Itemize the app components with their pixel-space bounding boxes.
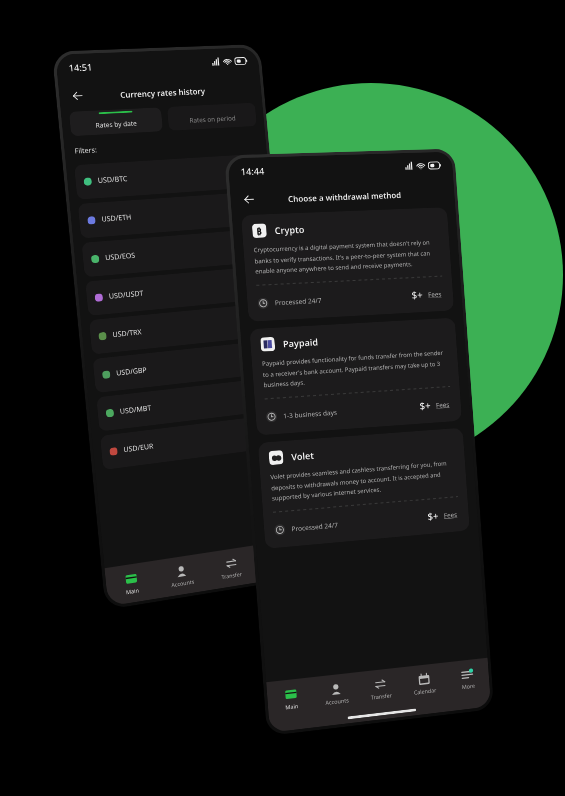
staticText: 0.000026 xyxy=(227,167,254,177)
button[interactable]: $+ xyxy=(417,395,452,415)
staticText: $+ xyxy=(419,398,432,413)
button[interactable]: USD/ETH xyxy=(78,191,266,239)
staticText: 0.000350 xyxy=(230,204,257,215)
staticText: ₿ xyxy=(256,224,263,237)
staticText: USD/EUR xyxy=(123,441,155,455)
button[interactable]: Accounts xyxy=(312,672,360,715)
staticText: USD/GBP xyxy=(116,365,147,379)
button[interactable]: USD/USDT xyxy=(85,265,273,316)
staticText: 1-3 business days xyxy=(283,408,338,420)
staticText: Fees xyxy=(428,289,442,299)
staticText: Main xyxy=(285,702,299,710)
button[interactable]: Transfer xyxy=(205,545,257,590)
staticText: Crypto xyxy=(274,223,305,236)
staticText: Currency rates history xyxy=(119,85,206,100)
button[interactable]: Paypaid xyxy=(249,317,462,436)
staticText: More xyxy=(462,682,475,690)
button[interactable]: ₿ xyxy=(241,207,454,322)
staticText: 14:44 xyxy=(240,164,266,177)
button[interactable]: Rates on period xyxy=(167,102,257,131)
button[interactable]: Volet xyxy=(258,428,470,549)
button[interactable]: $+ xyxy=(409,284,444,304)
staticText: Transfer xyxy=(221,570,243,580)
staticText: USD/EOS xyxy=(105,251,136,263)
staticText: USD/USDT xyxy=(108,288,144,302)
staticText: Rates by date xyxy=(95,118,138,130)
staticText: 0.844215 xyxy=(251,427,278,439)
staticText: Accounts xyxy=(171,578,195,588)
staticText: $+ xyxy=(427,509,439,523)
staticText: Filters: xyxy=(74,145,97,157)
staticText: 14:51 xyxy=(68,60,94,74)
button[interactable]: USD/TRX xyxy=(89,302,276,355)
button[interactable]: Calendar xyxy=(401,662,447,705)
staticText: Paypaid provides functionality for funds… xyxy=(262,349,449,389)
staticText: Processed 24/7 xyxy=(291,520,339,533)
staticText: Transfer xyxy=(371,691,393,701)
staticText: 0.990443 xyxy=(237,279,264,290)
staticText: USD/BTC xyxy=(97,174,128,186)
button[interactable]: Transfer xyxy=(357,667,404,710)
button[interactable]: USD/BTC xyxy=(74,154,263,200)
staticText: Volet provides seamless and cashless tra… xyxy=(270,459,457,503)
staticText: Main xyxy=(126,586,139,595)
staticText: Choose a withdrawal method xyxy=(287,189,402,204)
button[interactable]: USD/EUR xyxy=(100,413,286,470)
staticText: Fees xyxy=(436,400,450,410)
button[interactable]: Main xyxy=(104,560,159,606)
staticText: USD/MBT xyxy=(119,403,152,417)
button[interactable]: Back xyxy=(67,86,88,105)
button[interactable]: USD/MBT xyxy=(96,376,283,432)
button[interactable]: More xyxy=(445,658,490,700)
staticText: Calendar xyxy=(414,686,437,696)
staticText: 0.036564 xyxy=(248,390,275,402)
staticText: Rates on period xyxy=(189,113,237,125)
button[interactable]: USD/GBP xyxy=(92,339,280,393)
staticText: 2.000000 xyxy=(234,241,261,252)
staticText: Processed 24/7 xyxy=(275,296,322,307)
button[interactable]: Accounts xyxy=(155,553,208,598)
staticText: Accounts xyxy=(325,696,349,706)
staticText: USD/ETH xyxy=(101,212,132,225)
staticText: Fees xyxy=(444,510,458,520)
button[interactable]: Back xyxy=(239,190,259,209)
button[interactable]: Calendar xyxy=(254,538,306,582)
button[interactable]: USD/EOS xyxy=(81,228,269,277)
button[interactable]: $+ xyxy=(425,505,460,526)
staticText: Volet xyxy=(291,449,315,462)
button[interactable]: Rates by date xyxy=(69,107,163,136)
staticText: 2.820912 xyxy=(241,316,268,327)
button[interactable]: Main xyxy=(266,677,315,721)
staticText: 0.794005 xyxy=(244,353,271,365)
staticText: USD/TRX xyxy=(112,327,143,340)
staticText: $+ xyxy=(411,287,424,302)
staticText: Paypaid xyxy=(282,335,318,349)
staticText: Cryptocurrency is a digital payment syst… xyxy=(253,238,441,276)
